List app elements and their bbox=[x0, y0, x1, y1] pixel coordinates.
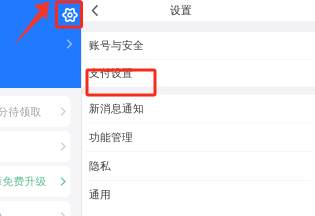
staticText: 设置 bbox=[170, 4, 192, 17]
button[interactable]: 账号与安全 bbox=[82, 32, 315, 59]
button[interactable]: 保障免费升级 bbox=[0, 166, 88, 197]
staticText: 新消息通知 bbox=[89, 102, 144, 115]
button[interactable]: 通用 bbox=[82, 181, 315, 209]
button[interactable] bbox=[0, 131, 88, 162]
button[interactable]: Back bbox=[82, 0, 108, 21]
button[interactable]: 0.00 bbox=[0, 201, 88, 216]
staticText: 0.00 bbox=[0, 209, 1, 216]
staticText: 5积分待领取 bbox=[0, 104, 41, 119]
staticText: 账号与安全 bbox=[89, 39, 144, 52]
staticText: 通用 bbox=[89, 188, 111, 201]
staticText: 支付设置 bbox=[89, 67, 133, 80]
staticText: 功能管理 bbox=[89, 131, 133, 144]
button[interactable]: 隐私 bbox=[82, 152, 315, 180]
button[interactable]: 5积分待领取 bbox=[0, 96, 88, 127]
staticText: 保障免费升级 bbox=[0, 175, 46, 188]
button[interactable]: 支付设置 bbox=[82, 60, 315, 87]
staticText: 隐私 bbox=[89, 159, 111, 173]
button[interactable]: 新消息通知 bbox=[82, 95, 315, 123]
button[interactable]: 功能管理 bbox=[82, 123, 315, 151]
